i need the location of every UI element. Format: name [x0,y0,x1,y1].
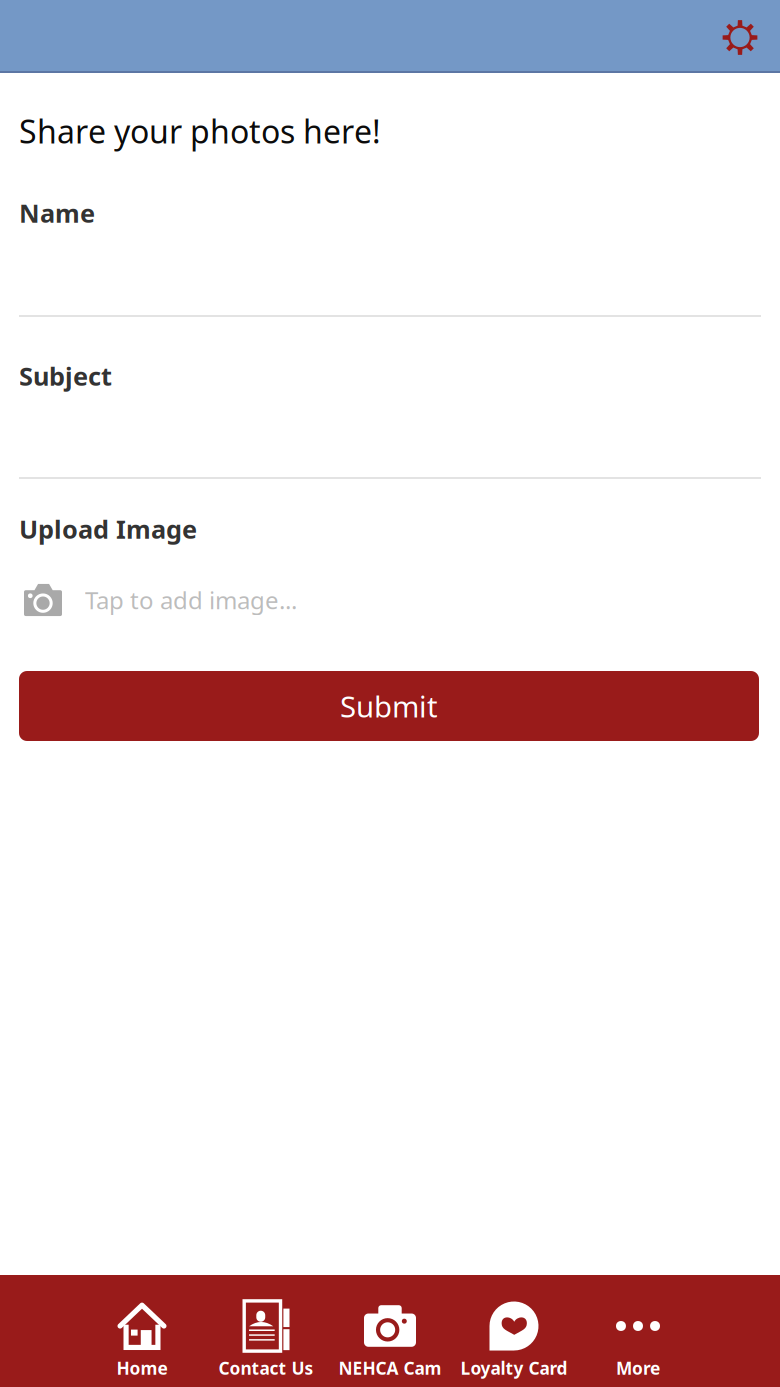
button[interactable]: Settings [709,0,771,73]
button[interactable]: Name [19,200,761,317]
staticText: Share your photos here! [19,110,381,152]
button[interactable]: Home [80,1275,204,1387]
button[interactable]: Tap to add image... [19,576,761,624]
button[interactable]: Loyalty Card [452,1275,576,1387]
staticText: Tap to add image... [85,584,297,616]
button[interactable]: Contact Us [204,1275,328,1387]
staticText: Loyalty Card [460,1356,567,1379]
staticText: Home [116,1356,167,1379]
staticText: Subject [19,359,112,393]
staticText: Submit [340,686,438,725]
button[interactable]: Subject [19,363,761,479]
staticText: More [616,1356,660,1379]
staticText: Contact Us [218,1356,313,1379]
staticText: Upload Image [19,512,197,546]
staticText: NEHCA Cam [338,1356,441,1379]
staticText: Name [19,196,95,230]
button[interactable]: More [576,1275,700,1387]
button[interactable]: Submit [19,671,759,741]
button[interactable]: NEHCA Cam [328,1275,452,1387]
